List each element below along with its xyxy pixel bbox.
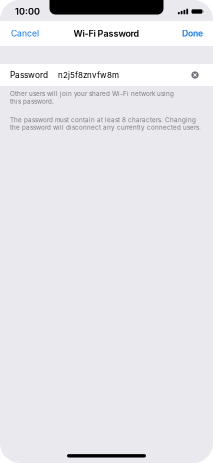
staticText: The password must contain at least 8 cha… xyxy=(10,116,201,131)
staticText: n2j5f8znvfw8m xyxy=(58,70,119,80)
button[interactable]: Done xyxy=(172,21,213,46)
staticText: Other users will join your shared Wi-Fi … xyxy=(10,90,174,105)
button[interactable]: Clear text xyxy=(188,67,202,83)
staticText: Password xyxy=(10,70,48,80)
staticText: Wi-Fi Password xyxy=(73,28,139,39)
staticText: Cancel xyxy=(11,28,39,39)
button[interactable]: Cancel xyxy=(0,21,50,46)
staticText: Done xyxy=(182,28,203,39)
staticText: 10:00 xyxy=(15,6,40,17)
